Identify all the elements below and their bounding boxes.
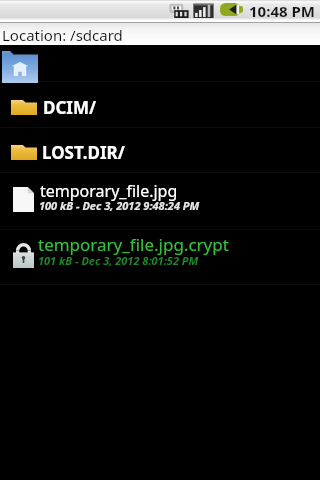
button[interactable]: LOST.DIR/ [0,127,320,172]
staticText: LOST.DIR/ [42,141,125,164]
button[interactable]: Home folder [0,45,320,81]
staticText: temporary_file.jpg [40,180,178,202]
button[interactable]: DCIM/ [0,81,320,127]
staticText: DCIM/ [43,96,97,119]
staticText: 10:48 PM [249,1,315,21]
staticText: Location: /sdcard [2,25,123,45]
button[interactable]: temporary_file.jpg.crypt [0,229,320,284]
staticText: 100 kB - Dec 3, 2012 9:48:24 PM [39,198,200,213]
staticText: temporary_file.jpg.crypt [38,233,229,256]
staticText: 101 kB - Dec 3, 2012 8:01:52 PM [38,253,199,268]
button[interactable]: temporary_file.jpg [0,172,320,229]
